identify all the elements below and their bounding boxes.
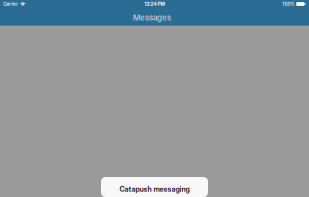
staticText: 100% — [282, 1, 294, 7]
button[interactable]: Catapush messaging — [101, 177, 208, 197]
staticText: Catapush messaging — [119, 185, 189, 193]
staticText: 12:24 PM — [144, 1, 164, 7]
staticText: Carrier — [3, 1, 18, 7]
staticText: Messages — [133, 12, 171, 22]
